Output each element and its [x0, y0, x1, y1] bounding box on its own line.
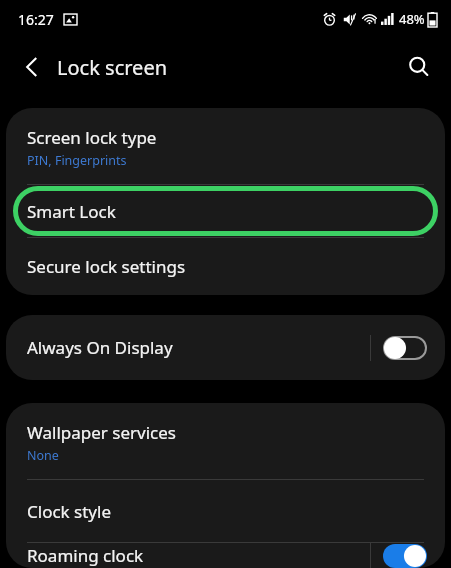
button[interactable]: Screen lock type: [6, 108, 445, 184]
staticText: Always On Display: [27, 336, 370, 359]
staticText: Secure lock settings: [27, 255, 186, 278]
staticText: 16:27: [18, 10, 54, 29]
staticText: Lock screen: [57, 54, 168, 81]
staticText: None: [27, 447, 59, 464]
button[interactable]: Always On Display toggle: [383, 336, 427, 360]
button[interactable]: Wallpaper services: [6, 403, 445, 479]
button[interactable]: Secure lock settings: [6, 238, 445, 295]
staticText: Clock style: [27, 500, 111, 523]
button[interactable]: Smart Lock: [6, 185, 445, 237]
staticText: PIN, Fingerprints: [27, 152, 127, 169]
button[interactable]: Always On Display: [6, 315, 445, 380]
button[interactable]: Back: [10, 45, 54, 89]
button[interactable]: Search: [397, 45, 441, 89]
staticText: Wallpaper services: [27, 421, 176, 444]
staticText: Roaming clock: [27, 544, 370, 567]
button[interactable]: Clock style: [6, 480, 445, 542]
staticText: 48%: [399, 10, 425, 28]
button[interactable]: Roaming clock: [6, 543, 445, 568]
staticText: Screen lock type: [27, 126, 157, 149]
staticText: Smart Lock: [27, 200, 116, 223]
button[interactable]: Roaming clock toggle: [383, 544, 427, 568]
